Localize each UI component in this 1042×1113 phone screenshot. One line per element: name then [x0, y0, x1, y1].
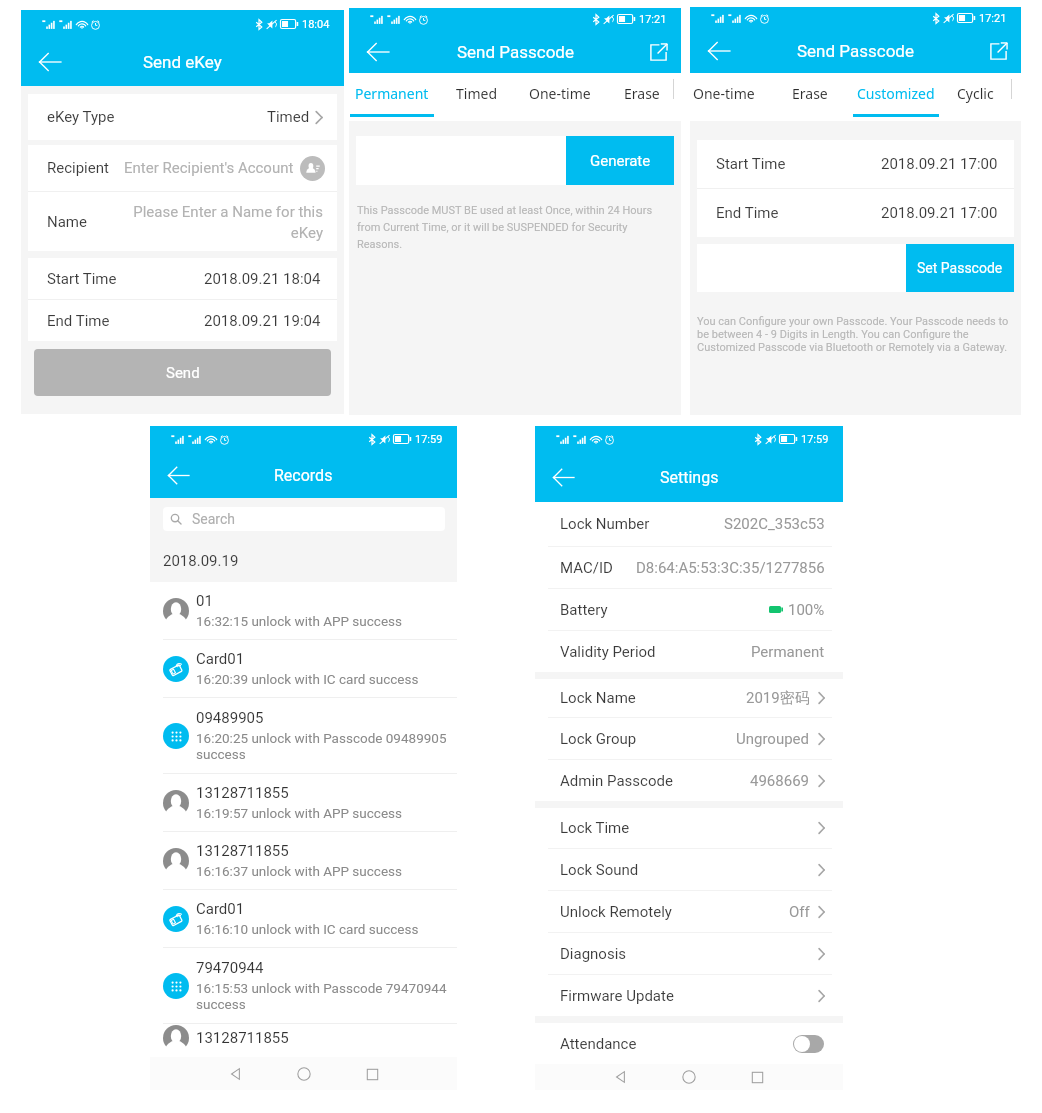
- button[interactable]: Validity Period: [535, 631, 843, 672]
- button[interactable]: Share: [985, 38, 1011, 64]
- staticText: 17:59: [801, 433, 829, 446]
- button[interactable]: Back: [32, 44, 68, 80]
- staticText: Recipient: [47, 159, 109, 177]
- button[interactable]: Home: [676, 1064, 702, 1090]
- staticText: Lock Group: [560, 730, 637, 748]
- button[interactable]: Lock Group: [535, 718, 843, 760]
- button[interactable]: Diagnosis: [535, 933, 843, 975]
- staticText: 16:20:25 unlock with Passcode 09489905 s…: [196, 730, 449, 763]
- button[interactable]: 79470944: [150, 948, 457, 1024]
- staticText: Lock Sound: [560, 861, 639, 879]
- button[interactable]: Lock Number: [535, 502, 843, 547]
- button[interactable]: Recents: [744, 1064, 770, 1090]
- staticText: End Time: [716, 204, 779, 222]
- button[interactable]: Attendance toggle: [793, 1035, 824, 1053]
- button[interactable]: Back: [546, 460, 581, 495]
- staticText: Send eKey: [143, 52, 222, 72]
- staticText: Firmware Update: [560, 987, 674, 1005]
- staticText: 16:19:57 unlock with APP success: [196, 805, 403, 821]
- staticText: Permanent: [355, 84, 429, 103]
- staticText: You can Configure your own Passcode. You…: [697, 315, 1017, 354]
- button[interactable]: Back: [701, 33, 737, 69]
- staticText: 01: [196, 592, 213, 610]
- button[interactable]: One-time: [518, 73, 602, 121]
- button[interactable]: Lock Name: [535, 679, 843, 718]
- staticText: Search: [192, 511, 236, 527]
- staticText: Permanent: [751, 643, 825, 661]
- button[interactable]: Lock Time: [535, 808, 843, 849]
- staticText: 2019密码: [746, 689, 810, 708]
- staticText: 16:15:53 unlock with Passcode 79470944 s…: [196, 980, 449, 1013]
- staticText: Generate: [590, 152, 651, 170]
- staticText: Timed: [267, 108, 310, 126]
- staticText: Unlock Remotely: [560, 903, 672, 921]
- staticText: 17:21: [979, 12, 1007, 25]
- staticText: Off: [789, 903, 810, 921]
- staticText: Ungrouped: [736, 730, 810, 748]
- staticText: Battery: [560, 601, 608, 619]
- staticText: 2018.09.21 17:00: [881, 204, 998, 222]
- button[interactable]: Back: [608, 1064, 634, 1090]
- staticText: Settings: [660, 468, 719, 487]
- button[interactable]: Generate: [566, 136, 674, 185]
- button[interactable]: Customized: [853, 73, 939, 121]
- button[interactable]: Back: [360, 34, 396, 70]
- button[interactable]: Card01: [150, 640, 457, 698]
- staticText: 16:32:15 unlock with APP success: [196, 613, 403, 629]
- button[interactable]: 13128711855: [150, 832, 457, 890]
- staticText: Card01: [196, 650, 245, 668]
- button[interactable]: Set Passcode: [906, 244, 1014, 292]
- staticText: Lock Time: [560, 819, 630, 837]
- staticText: Lock Number: [560, 515, 650, 533]
- button[interactable]: Cyclic: [939, 73, 1012, 121]
- staticText: 16:20:39 unlock with IC card success: [196, 671, 419, 687]
- staticText: 17:21: [639, 13, 667, 26]
- button[interactable]: Unlock Remotely: [535, 891, 843, 933]
- staticText: D8:64:A5:53:3C:35/1277856: [636, 559, 825, 577]
- button[interactable]: Back: [161, 458, 196, 493]
- staticText: 100%: [788, 601, 825, 619]
- staticText: 79470944: [196, 959, 264, 977]
- staticText: One-time: [693, 84, 755, 103]
- button[interactable]: Erase: [602, 73, 682, 121]
- button[interactable]: Send: [34, 349, 331, 396]
- button[interactable]: Timed: [434, 73, 518, 121]
- staticText: Validity Period: [560, 643, 656, 661]
- button[interactable]: One-time: [681, 73, 767, 121]
- staticText: End Time: [47, 312, 110, 330]
- button[interactable]: 13128711855: [150, 1024, 457, 1051]
- staticText: 18:04: [302, 18, 330, 31]
- button[interactable]: Permanent: [350, 73, 434, 121]
- button[interactable]: Card01: [150, 890, 457, 948]
- staticText: 16:16:10 unlock with IC card success: [196, 921, 419, 937]
- staticText: Diagnosis: [560, 945, 627, 963]
- staticText: Lock Name: [560, 689, 636, 707]
- staticText: Please Enter a Name for this eKey: [125, 203, 323, 241]
- button[interactable]: 13128711855: [150, 774, 457, 832]
- button[interactable]: Recents: [359, 1061, 385, 1087]
- staticText: Start Time: [716, 155, 786, 173]
- button[interactable]: Firmware Update: [535, 975, 843, 1016]
- button[interactable]: Erase: [767, 73, 853, 121]
- button[interactable]: 01: [150, 582, 457, 640]
- button[interactable]: Home: [291, 1061, 317, 1087]
- staticText: Send: [166, 364, 200, 382]
- button[interactable]: Back: [223, 1061, 249, 1087]
- button[interactable]: Search: [170, 507, 436, 531]
- staticText: Customized: [857, 84, 935, 103]
- button[interactable]: Share: [645, 39, 671, 65]
- staticText: Records: [274, 466, 333, 485]
- button[interactable]: Admin Passcode: [535, 760, 843, 801]
- button[interactable]: MAC/ID: [535, 547, 843, 589]
- button[interactable]: 09489905: [150, 698, 457, 774]
- staticText: 09489905: [196, 709, 264, 727]
- staticText: 13128711855: [196, 784, 289, 802]
- staticText: Send Passcode: [797, 41, 914, 61]
- staticText: 4968669: [750, 772, 810, 790]
- staticText: Erase: [624, 84, 660, 103]
- button[interactable]: Lock Sound: [535, 849, 843, 891]
- staticText: Erase: [792, 84, 828, 103]
- staticText: 2018.09.21 17:00: [881, 155, 998, 173]
- button[interactable]: Attendance: [560, 1023, 824, 1064]
- staticText: Start Time: [47, 270, 117, 288]
